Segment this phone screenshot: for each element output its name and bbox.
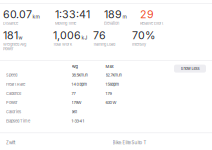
staticText: Training Load bbox=[93, 42, 115, 47]
staticText: 38.5km/h bbox=[71, 73, 87, 77]
staticText: 156bpm bbox=[105, 82, 119, 87]
staticText: 77 bbox=[71, 91, 75, 96]
staticText: Relative Effort bbox=[140, 21, 163, 26]
staticText: Elapsed Time bbox=[6, 119, 30, 123]
staticText: 29 bbox=[140, 8, 154, 21]
staticText: 1:33:41 bbox=[55, 8, 90, 21]
staticText: Bike: Elite Suito T bbox=[112, 140, 146, 145]
staticText: 76 bbox=[93, 29, 106, 42]
staticText: w bbox=[18, 35, 22, 41]
staticText: km bbox=[32, 14, 39, 20]
staticText: 179W bbox=[71, 100, 81, 105]
staticText: kJ bbox=[81, 35, 87, 41]
staticText: Weighted Avg Power bbox=[3, 42, 26, 51]
staticText: 189 bbox=[104, 8, 122, 21]
staticText: Speed bbox=[6, 73, 17, 77]
staticText: 1,006 bbox=[53, 29, 81, 42]
staticText: Elevation bbox=[104, 21, 119, 26]
button[interactable]: Show Less bbox=[174, 65, 206, 73]
staticText: 181 bbox=[3, 29, 18, 42]
staticText: Avg bbox=[71, 64, 77, 69]
staticText: Heart Rate bbox=[6, 82, 25, 87]
staticText: Max bbox=[105, 64, 113, 69]
staticText: Cadence bbox=[6, 91, 21, 96]
staticText: 62.7km/h bbox=[105, 73, 121, 77]
staticText: Calories bbox=[6, 109, 21, 114]
staticText: 630W bbox=[105, 100, 116, 105]
staticText: 961 bbox=[71, 109, 77, 114]
staticText: Show Less bbox=[180, 66, 199, 71]
staticText: 60.07 bbox=[3, 8, 32, 21]
staticText: 1:33:41 bbox=[71, 119, 84, 123]
staticText: Distance bbox=[3, 21, 18, 26]
staticText: 179 bbox=[105, 91, 111, 96]
staticText: Moving Time bbox=[55, 21, 76, 26]
staticText: m bbox=[122, 14, 126, 20]
staticText: Total Work bbox=[53, 42, 72, 47]
staticText: Power bbox=[6, 100, 18, 105]
staticText: Intensity bbox=[132, 42, 146, 47]
staticText: Zwift bbox=[6, 140, 15, 145]
staticText: 140bpm bbox=[71, 82, 87, 87]
staticText: 70% bbox=[132, 29, 155, 42]
